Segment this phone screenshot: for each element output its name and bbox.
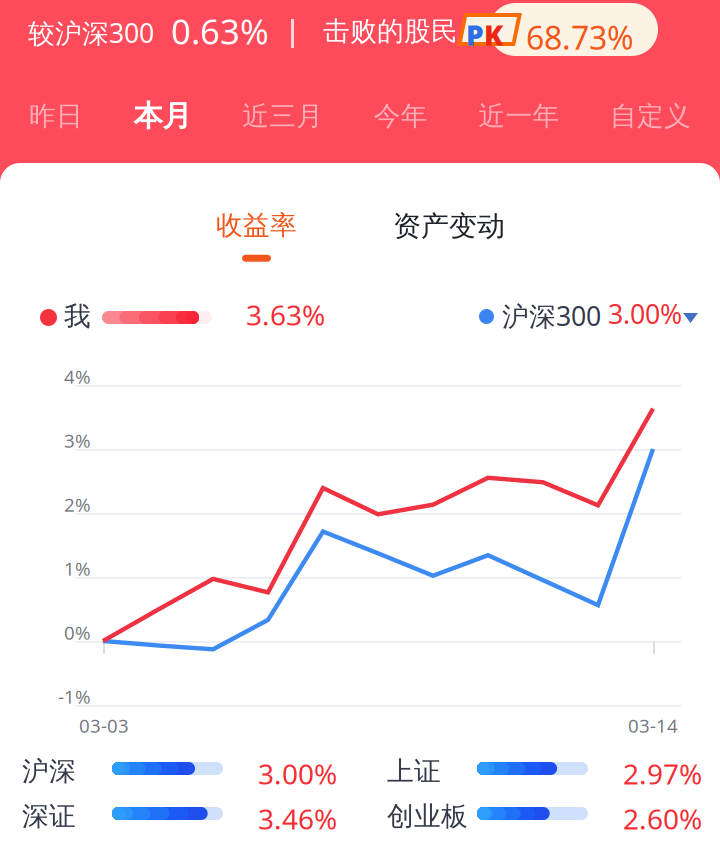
button[interactable]: 沪深300 xyxy=(479,293,705,339)
button[interactable]: 上证 xyxy=(387,747,700,791)
button[interactable]: 近一年 xyxy=(478,100,559,132)
staticText: 沪深 xyxy=(22,755,76,788)
staticText: 资产变动 xyxy=(393,209,505,243)
button[interactable]: 本月 xyxy=(134,98,192,134)
staticText: 2.60% xyxy=(623,800,702,837)
staticText: 较沪深300 xyxy=(28,15,154,50)
button[interactable]: 较沪深300 xyxy=(28,13,268,55)
staticText: 3.63% xyxy=(246,296,325,333)
button[interactable]: 昨日 xyxy=(29,100,83,132)
staticText: 68.73% xyxy=(526,16,634,58)
staticText: 近一年 xyxy=(478,100,559,132)
staticText: 今年 xyxy=(374,100,428,132)
staticText: 3.00% xyxy=(258,755,337,792)
button[interactable]: 今年 xyxy=(374,100,428,132)
staticText: 自定义 xyxy=(610,100,691,132)
staticText: 1% xyxy=(64,556,91,581)
staticText: 3% xyxy=(64,428,91,453)
staticText: 03-14 xyxy=(628,713,678,738)
button[interactable]: 我 xyxy=(40,294,332,340)
staticText: 上证 xyxy=(387,755,441,788)
staticText: 创业板 xyxy=(387,800,468,833)
staticText: 收益率 xyxy=(216,209,297,242)
button[interactable]: 深证 xyxy=(22,792,335,836)
staticText: 昨日 xyxy=(29,100,83,132)
staticText: 03-03 xyxy=(79,713,129,738)
staticText: 深证 xyxy=(22,800,76,833)
staticText: 本月 xyxy=(134,98,192,134)
staticText: K xyxy=(484,16,503,53)
staticText: 沪深300 xyxy=(502,298,601,333)
button[interactable]: 沪深 xyxy=(22,747,335,791)
staticText: 2% xyxy=(64,492,91,517)
staticText: P xyxy=(466,16,484,53)
staticText: 4% xyxy=(64,364,91,389)
staticText: 3.46% xyxy=(258,800,337,837)
staticText: 2.97% xyxy=(623,755,702,792)
button[interactable]: 收益率 xyxy=(216,209,297,262)
button[interactable]: 近三月 xyxy=(242,100,323,132)
staticText: 0% xyxy=(64,620,91,645)
button[interactable]: 资产变动 xyxy=(393,209,505,263)
staticText: -1% xyxy=(58,684,91,709)
staticText: 击败的股民 xyxy=(323,15,458,48)
button[interactable]: 68.73% xyxy=(489,3,658,56)
button[interactable]: 自定义 xyxy=(610,100,691,132)
staticText: 我 xyxy=(64,300,91,333)
staticText: 0.63% xyxy=(171,8,269,54)
staticText: 近三月 xyxy=(242,100,323,132)
button[interactable]: 创业板 xyxy=(387,792,700,836)
staticText: 3.00% xyxy=(608,296,682,331)
